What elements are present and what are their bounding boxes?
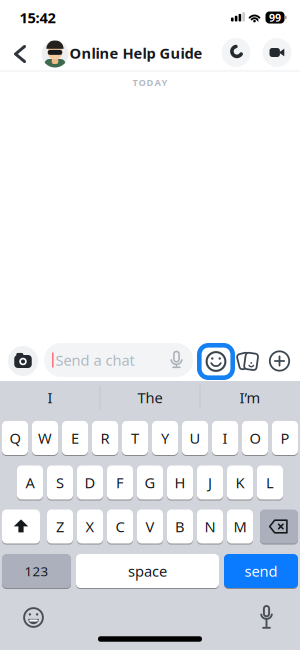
staticText: The [137, 388, 162, 407]
staticText: 15:42 [19, 8, 55, 27]
button[interactable]: 123 [2, 554, 71, 588]
button[interactable]: G [137, 465, 163, 499]
button[interactable]: L [257, 465, 283, 499]
staticText: Z [56, 517, 64, 536]
button[interactable]: Camera [8, 346, 38, 376]
staticText: space [128, 561, 167, 581]
button[interactable]: Call [221, 38, 250, 67]
button[interactable]: Delete [260, 509, 298, 543]
button[interactable]: J [197, 465, 223, 499]
staticText: E [71, 428, 79, 448]
staticText: S [56, 473, 64, 492]
button[interactable]: Stickers [197, 343, 235, 380]
staticText: N [204, 517, 215, 536]
button[interactable]: Online Help Guide [69, 43, 202, 63]
staticText: L [266, 473, 274, 492]
button[interactable]: O [242, 421, 268, 455]
staticText: U [189, 428, 200, 448]
button[interactable]: K [227, 465, 253, 499]
staticText: I [47, 388, 52, 407]
staticText: Online Help Guide [69, 43, 202, 63]
staticText: W [38, 428, 52, 448]
staticText: B [175, 517, 185, 536]
staticText: 123 [24, 562, 48, 580]
button[interactable]: E [62, 421, 88, 455]
staticText: C [115, 517, 124, 536]
button[interactable]: I [212, 421, 238, 455]
staticText: I’m [239, 388, 260, 407]
staticText: R [100, 428, 109, 448]
staticText: Y [161, 428, 169, 448]
button[interactable]: Q [2, 421, 28, 455]
button[interactable]: Back [5, 36, 35, 72]
staticText: H [174, 473, 185, 492]
staticText: J [208, 473, 212, 492]
button[interactable]: Send a chat [44, 343, 193, 377]
button[interactable]: The [102, 383, 198, 411]
staticText: 99 [269, 10, 281, 25]
staticText: O [249, 428, 260, 448]
button[interactable]: space [76, 554, 219, 588]
button[interactable]: P [272, 421, 298, 455]
button[interactable]: Bitmoji stickers [236, 350, 260, 372]
button[interactable]: H [167, 465, 193, 499]
staticText: V [145, 517, 154, 536]
button[interactable]: M [227, 509, 253, 543]
button[interactable]: W [32, 421, 58, 455]
staticText: D [84, 473, 95, 492]
button[interactable]: Y [152, 421, 178, 455]
button[interactable]: Z [47, 509, 73, 543]
button[interactable]: Dictation [259, 605, 274, 629]
button[interactable]: T [122, 421, 148, 455]
staticText: Send a chat [56, 350, 135, 370]
staticText: G [144, 473, 155, 492]
button[interactable]: send [224, 554, 298, 588]
staticText: A [25, 473, 34, 492]
staticText: Q [9, 428, 20, 448]
button[interactable]: D [77, 465, 103, 499]
button[interactable]: R [92, 421, 118, 455]
button[interactable]: I [2, 383, 98, 411]
staticText: M [233, 517, 246, 536]
button[interactable]: U [182, 421, 208, 455]
staticText: T O D A Y [132, 76, 167, 89]
button[interactable]: Video call [262, 38, 291, 67]
button[interactable]: More [268, 350, 290, 372]
button[interactable]: Shift [2, 509, 40, 543]
staticText: X [85, 517, 94, 536]
button[interactable]: V [137, 509, 163, 543]
staticText: K [235, 473, 244, 492]
button[interactable]: F [107, 465, 133, 499]
button[interactable]: S [47, 465, 73, 499]
button[interactable]: Profile [41, 40, 68, 67]
staticText: I [222, 428, 227, 448]
button[interactable]: A [17, 465, 43, 499]
staticText: F [116, 473, 124, 492]
staticText: P [280, 428, 289, 448]
staticText: T [131, 428, 139, 448]
button[interactable]: C [107, 509, 133, 543]
button[interactable]: Emoji [20, 604, 46, 630]
staticText: send [244, 561, 277, 581]
button[interactable]: X [77, 509, 103, 543]
button[interactable]: N [197, 509, 223, 543]
button[interactable]: I’m [202, 383, 298, 411]
button[interactable]: B [167, 509, 193, 543]
